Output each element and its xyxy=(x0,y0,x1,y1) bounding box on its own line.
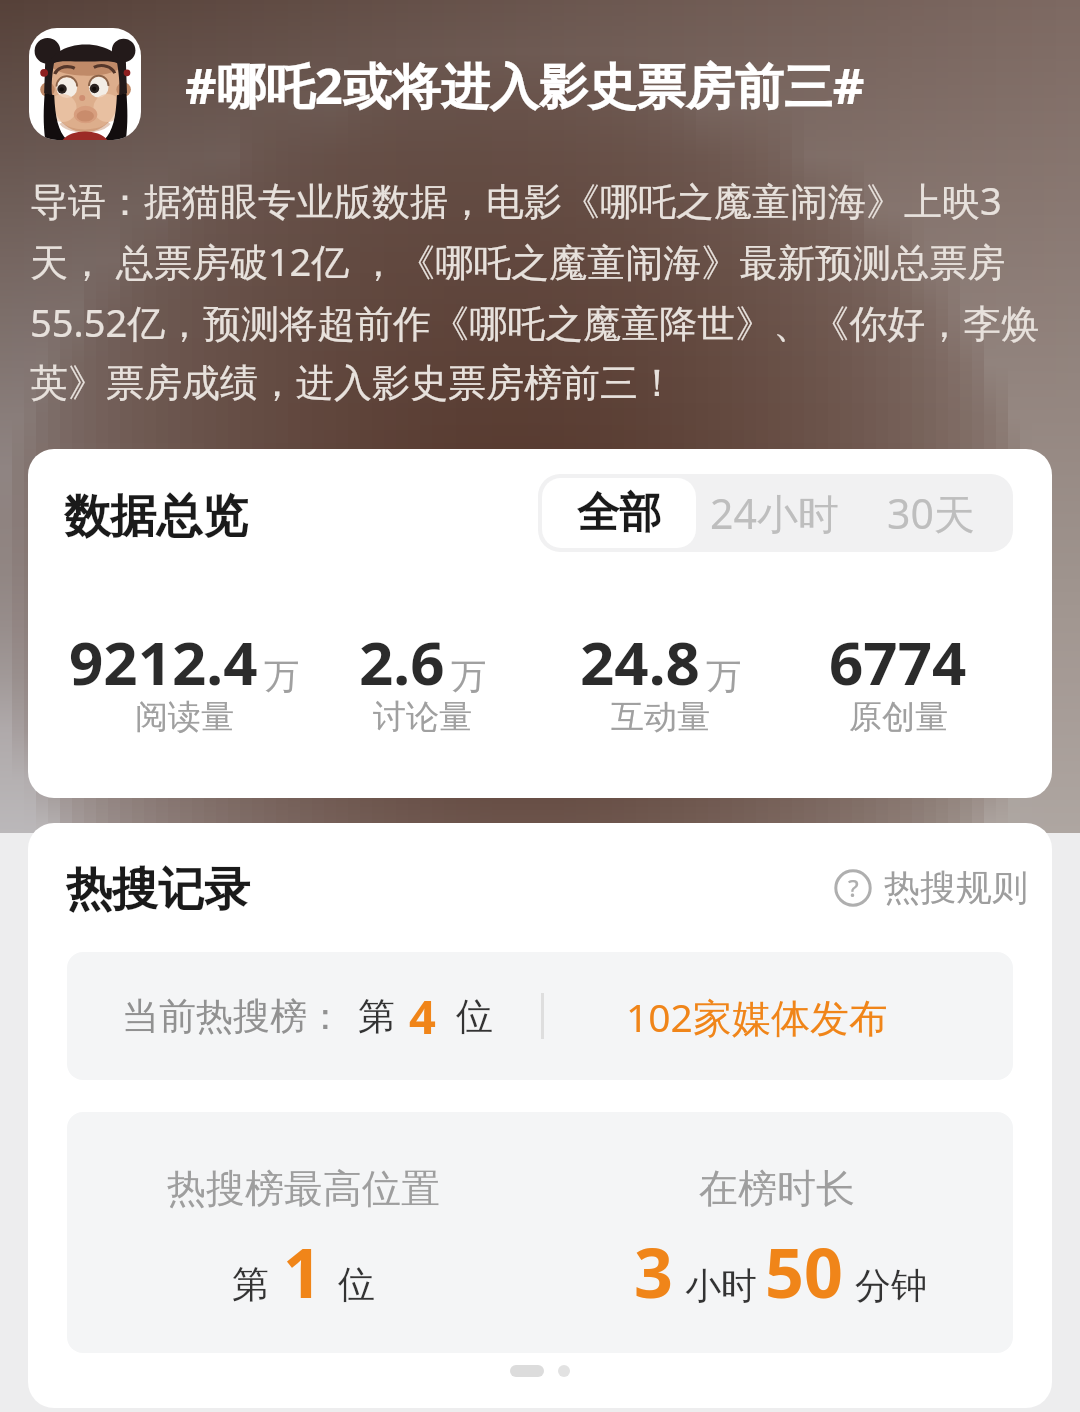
staticText: 互动量 xyxy=(611,696,710,738)
staticText: #哪吒2或将进入影史票房前三# xyxy=(185,52,865,119)
button[interactable]: Topic avatar xyxy=(29,28,141,140)
staticText: ? xyxy=(848,871,859,904)
staticText: 讨论量 xyxy=(373,696,472,738)
staticText: 小时 xyxy=(685,1263,757,1308)
staticText: 50 xyxy=(765,1225,843,1318)
staticText: 第 xyxy=(232,1261,269,1308)
staticText: 3 xyxy=(634,1225,673,1318)
staticText: 1 xyxy=(283,1225,322,1318)
button[interactable]: 全部 xyxy=(542,478,696,548)
staticText: 分钟 xyxy=(855,1263,927,1308)
staticText: 2.6 xyxy=(359,621,445,703)
staticText: 第 xyxy=(358,993,395,1040)
staticText: 数据总览 xyxy=(64,488,248,546)
button[interactable]: 24小时 xyxy=(700,474,848,552)
staticText: 24小时 xyxy=(710,485,839,541)
staticText: 位 xyxy=(338,1261,375,1308)
staticText: 原创量 xyxy=(849,696,948,738)
button[interactable]: ? xyxy=(834,865,1028,910)
staticText: 6774 xyxy=(829,621,967,703)
staticText: 热搜榜最高位置 xyxy=(167,1164,440,1213)
staticText: 24.8 xyxy=(580,621,700,703)
staticText: 万 xyxy=(264,654,299,698)
staticText: 位 xyxy=(456,993,493,1040)
staticText: 102家媒体发布 xyxy=(626,990,888,1043)
staticText: 万 xyxy=(706,654,741,698)
staticText: 导语：据猫眼专业版数据，电影《哪吒之魔童闹海》上映3天， 总票房破12亿 ，《哪… xyxy=(30,174,1054,407)
button[interactable]: 热搜榜最高位置 xyxy=(67,1112,1013,1353)
staticText: 万 xyxy=(451,654,486,698)
staticText: 4 xyxy=(409,984,436,1048)
staticText: 全部 xyxy=(577,487,661,540)
button[interactable]: 当前热搜榜： xyxy=(67,952,1013,1080)
button[interactable]: 30天 xyxy=(848,474,1013,552)
staticText: 热搜记录 xyxy=(66,861,250,919)
staticText: 热搜规则 xyxy=(884,865,1028,910)
staticText: 9212.4 xyxy=(69,621,258,703)
staticText: 当前热搜榜： xyxy=(122,993,344,1040)
staticText: 阅读量 xyxy=(135,696,234,738)
staticText: 30天 xyxy=(887,485,975,541)
staticText: 在榜时长 xyxy=(699,1164,855,1213)
